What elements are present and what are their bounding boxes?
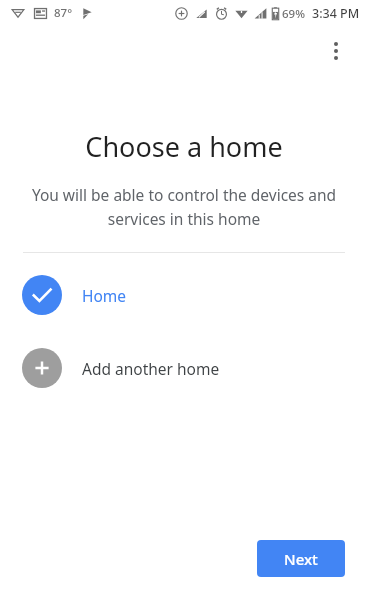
staticText: Add another home (82, 358, 220, 379)
staticText: Next (284, 549, 318, 569)
staticText: Home (82, 285, 127, 306)
button[interactable]: Home (0, 265, 368, 325)
button[interactable]: Add another home (0, 338, 368, 398)
staticText: 69% (282, 6, 305, 22)
staticText: 3:34 PM (312, 5, 360, 22)
staticText: You will be able to control the devices … (26, 184, 342, 229)
button[interactable]: Next (257, 540, 345, 577)
staticText: 87° (54, 5, 73, 21)
staticText: Choose a home (0, 128, 368, 165)
button[interactable]: More options (315, 30, 357, 72)
